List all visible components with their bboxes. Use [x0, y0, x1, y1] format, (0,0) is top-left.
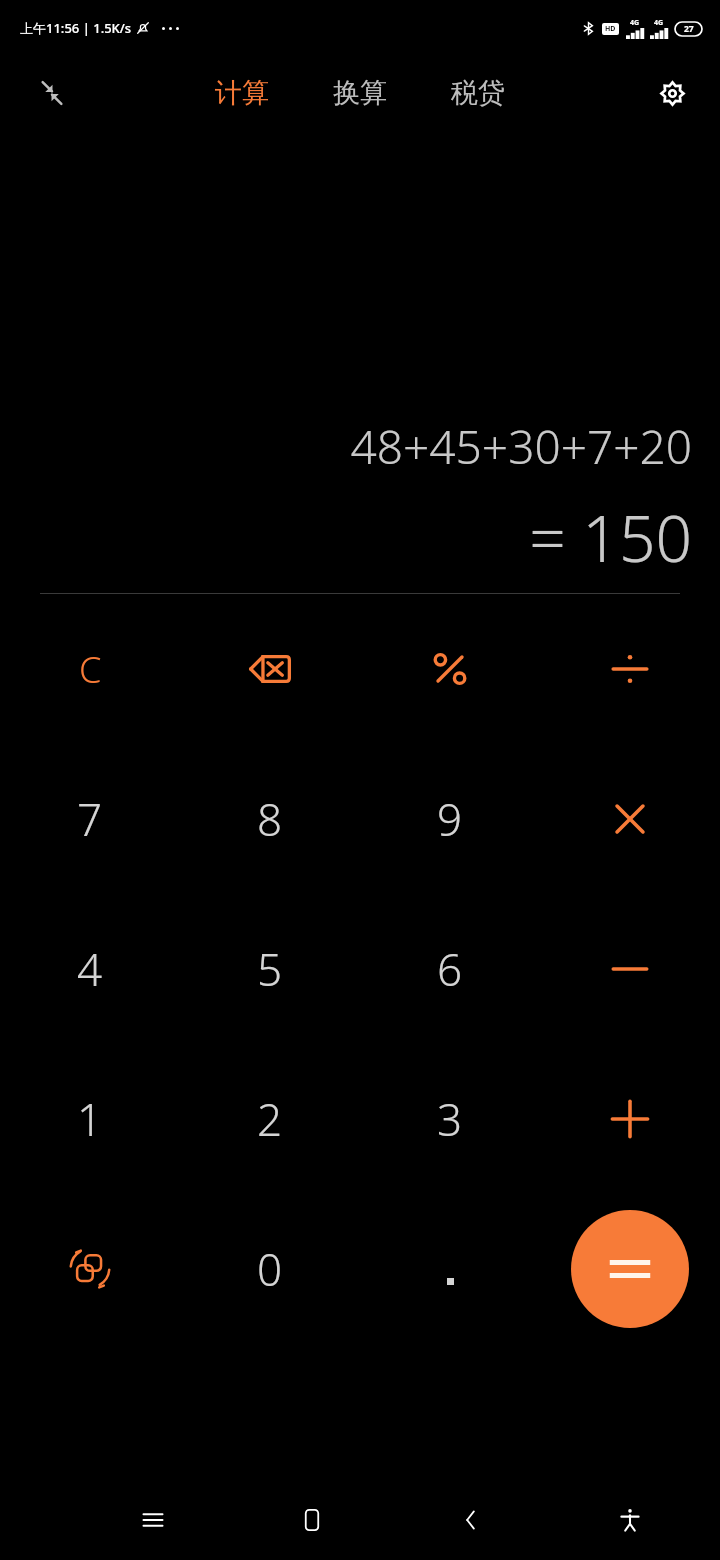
button[interactable] [571, 1210, 689, 1328]
button[interactable]: 7 [0, 744, 180, 894]
staticText: 8 [257, 789, 283, 849]
button[interactable]: 3 [360, 1044, 540, 1194]
staticText: 3 [437, 1089, 463, 1149]
button[interactable]: 2 [180, 1044, 360, 1194]
staticText: 7 [77, 789, 103, 849]
staticText: 换算 [333, 76, 387, 110]
button[interactable]: 1 [0, 1044, 180, 1194]
button[interactable]: Back [443, 1492, 499, 1548]
button[interactable]: Settings [644, 65, 700, 121]
button[interactable]: 6 [360, 894, 540, 1044]
staticText: 2 [257, 1089, 283, 1149]
staticText: 6 [437, 939, 463, 999]
staticText: 9 [437, 789, 463, 849]
button[interactable]: Accessibility [602, 1492, 658, 1548]
staticText: 0 [257, 1239, 283, 1299]
staticText: C [79, 645, 102, 694]
button[interactable]: Collapse [24, 65, 80, 121]
staticText: 4 [77, 939, 103, 999]
staticText: HD [605, 24, 616, 34]
staticText: 4G [654, 18, 664, 28]
staticText: 上午11:56 | 1.5K/s [20, 19, 132, 37]
button[interactable] [540, 594, 720, 744]
button[interactable]: Menu [125, 1492, 181, 1548]
staticText: 1 [77, 1089, 103, 1149]
staticText: 4G [630, 18, 640, 28]
staticText: 48+45+30+7+20 [350, 415, 692, 478]
staticText: 税贷 [451, 76, 505, 110]
button[interactable]: Plus [540, 1044, 720, 1194]
button[interactable]: Convert [0, 1194, 180, 1344]
button[interactable]: 计算 [209, 68, 275, 118]
staticText: 计算 [215, 76, 269, 110]
button[interactable]: Equals [540, 1194, 720, 1344]
button[interactable]: Backspace [180, 594, 360, 744]
button[interactable]: Minus [540, 894, 720, 1044]
button[interactable]: 8 [180, 744, 360, 894]
staticText: = 150 [529, 494, 692, 581]
button[interactable]: 4 [0, 894, 180, 1044]
button[interactable]: 税贷 [445, 68, 511, 118]
button[interactable]: Multiply [540, 744, 720, 894]
button[interactable]: 换算 [327, 68, 393, 118]
button[interactable] [360, 594, 540, 744]
staticText: 5 [257, 939, 283, 999]
button[interactable]: 5 [180, 894, 360, 1044]
button[interactable]: Home [284, 1492, 340, 1548]
button[interactable] [360, 1194, 540, 1344]
button[interactable]: C [0, 594, 180, 744]
button[interactable]: 0 [180, 1194, 360, 1344]
button[interactable]: 9 [360, 744, 540, 894]
staticText: 27 [684, 23, 694, 35]
